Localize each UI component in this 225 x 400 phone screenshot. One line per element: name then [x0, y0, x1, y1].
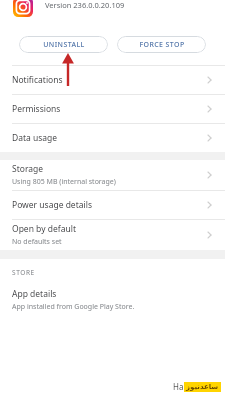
- staticText: STORE: [12, 268, 35, 277]
- staticText: Power usage details: [12, 199, 92, 211]
- staticText: ساعدنیوز: [186, 383, 219, 391]
- staticText: UNINSTALL: [43, 40, 85, 50]
- staticText: No defaults set: [12, 237, 62, 247]
- button[interactable]: UNINSTALL: [19, 36, 108, 53]
- staticText: Storage: [12, 163, 44, 175]
- staticText: Notifications: [12, 74, 63, 86]
- staticText: FORCE STOP: [139, 40, 185, 50]
- staticText: Data usage: [12, 132, 58, 144]
- button[interactable]: FORCE STOP: [117, 36, 206, 53]
- button[interactable]: Storage: [0, 160, 225, 190]
- staticText: Open by default: [12, 223, 76, 235]
- staticText: Version 236.0.0.20.109: [45, 0, 125, 10]
- button[interactable]: App details: [0, 287, 225, 313]
- button[interactable]: Data usage: [0, 124, 225, 152]
- staticText: App details: [12, 288, 57, 300]
- button[interactable]: Notifications: [0, 66, 225, 94]
- staticText: Permissions: [12, 103, 61, 115]
- button[interactable]: Open by default: [0, 220, 225, 250]
- staticText: Using 805 MB (internal storage): [12, 177, 116, 187]
- staticText: Ha: [173, 381, 184, 392]
- button[interactable]: Permissions: [0, 95, 225, 123]
- button[interactable]: Power usage details: [0, 191, 225, 219]
- staticText: App installed from Google Play Store.: [12, 302, 135, 312]
